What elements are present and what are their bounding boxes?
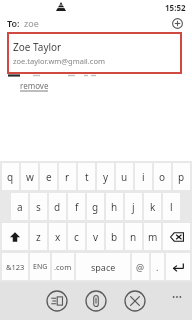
staticText: d bbox=[54, 200, 61, 214]
button[interactable]: space bbox=[76, 253, 130, 280]
button[interactable]: To: bbox=[7, 17, 39, 29]
staticText: c bbox=[74, 230, 79, 244]
button[interactable]: More options bbox=[168, 288, 186, 306]
staticText: remove bbox=[20, 80, 49, 91]
button[interactable]: .com bbox=[52, 253, 74, 280]
button[interactable]: k bbox=[144, 193, 161, 220]
button[interactable]: v bbox=[87, 223, 104, 250]
staticText: s bbox=[36, 200, 41, 214]
button[interactable]: . bbox=[151, 253, 164, 280]
staticText: a bbox=[17, 200, 23, 214]
button[interactable]: o bbox=[154, 163, 171, 190]
staticText: @ bbox=[136, 261, 145, 273]
staticText: j bbox=[132, 200, 135, 214]
staticText: w bbox=[26, 170, 34, 184]
button[interactable]: Shift bbox=[2, 223, 28, 250]
button[interactable]: h bbox=[106, 193, 123, 220]
staticText: Zoe Taylor bbox=[13, 40, 62, 54]
button[interactable]: Zoe Taylor bbox=[7, 32, 182, 74]
staticText: q bbox=[7, 170, 14, 184]
staticText: k bbox=[150, 200, 156, 214]
button[interactable]: l bbox=[163, 193, 180, 220]
button[interactable]: d bbox=[49, 193, 66, 220]
staticText: u bbox=[121, 170, 128, 184]
button[interactable]: t bbox=[78, 163, 95, 190]
staticText: 15:52 bbox=[165, 2, 186, 13]
staticText: .com bbox=[54, 262, 72, 272]
button[interactable]: p bbox=[173, 163, 190, 190]
button[interactable]: c bbox=[68, 223, 85, 250]
button[interactable]: j bbox=[125, 193, 142, 220]
button[interactable]: s bbox=[30, 193, 47, 220]
button[interactable]: x bbox=[49, 223, 66, 250]
button[interactable]: Enter bbox=[166, 253, 190, 280]
button[interactable]: Add recipient bbox=[168, 14, 186, 32]
button[interactable]: Send bbox=[46, 290, 68, 312]
button[interactable]: w bbox=[21, 163, 38, 190]
button[interactable]: &123 bbox=[2, 253, 28, 280]
button[interactable]: z bbox=[30, 223, 47, 250]
staticText: h bbox=[111, 200, 118, 214]
staticText: To: bbox=[7, 17, 20, 29]
button[interactable]: q bbox=[2, 163, 19, 190]
staticText: x bbox=[55, 230, 61, 244]
button[interactable]: @ bbox=[132, 253, 149, 280]
staticText: &123 bbox=[6, 262, 25, 272]
button[interactable]: g bbox=[87, 193, 104, 220]
staticText: zoe bbox=[24, 17, 39, 29]
staticText: g bbox=[92, 200, 99, 214]
staticText: v bbox=[93, 230, 99, 244]
staticText: o bbox=[159, 170, 166, 184]
staticText: z bbox=[36, 230, 41, 244]
staticText: y bbox=[103, 170, 109, 184]
staticText: t bbox=[85, 170, 89, 184]
button[interactable]: m bbox=[144, 223, 161, 250]
button[interactable]: b bbox=[106, 223, 123, 250]
button[interactable]: y bbox=[97, 163, 114, 190]
staticText: m bbox=[148, 230, 158, 244]
staticText: p bbox=[178, 170, 185, 184]
staticText: space bbox=[91, 261, 116, 273]
button[interactable]: a bbox=[11, 193, 28, 220]
button[interactable]: f bbox=[68, 193, 85, 220]
staticText: zoe.taylor.wm@gmail.com bbox=[13, 56, 105, 66]
staticText: i bbox=[142, 170, 145, 184]
button[interactable]: r bbox=[59, 163, 76, 190]
button[interactable]: Backspace bbox=[163, 223, 190, 250]
staticText: r bbox=[65, 170, 70, 184]
staticText: ENG bbox=[33, 262, 48, 272]
staticText: b bbox=[111, 230, 118, 244]
button[interactable]: remove bbox=[20, 80, 49, 92]
button[interactable]: u bbox=[116, 163, 133, 190]
staticText: n bbox=[130, 230, 137, 244]
button[interactable]: e bbox=[40, 163, 57, 190]
button[interactable]: Attach bbox=[85, 290, 107, 312]
staticText: l bbox=[170, 200, 173, 214]
staticText: e bbox=[46, 170, 52, 184]
button[interactable]: ENG bbox=[30, 253, 50, 280]
button[interactable]: Close bbox=[124, 290, 146, 312]
staticText: f bbox=[75, 200, 79, 214]
button[interactable]: n bbox=[125, 223, 142, 250]
button[interactable]: i bbox=[135, 163, 152, 190]
staticText: . bbox=[156, 261, 159, 273]
